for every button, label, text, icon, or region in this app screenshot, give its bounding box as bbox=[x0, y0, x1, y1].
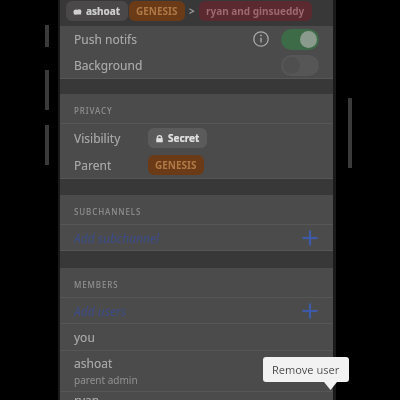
button[interactable]: ashoat bbox=[60, 351, 333, 391]
staticText: MEMBERS bbox=[74, 279, 119, 290]
staticText: Remove user bbox=[272, 362, 340, 377]
button[interactable]: Off bbox=[281, 55, 319, 76]
button[interactable]: you bbox=[60, 324, 333, 350]
staticText: PRIVACY bbox=[74, 105, 113, 116]
button[interactable]: Add bbox=[301, 229, 319, 247]
button[interactable]: Parent bbox=[60, 151, 333, 178]
staticText: Parent bbox=[74, 157, 112, 173]
button[interactable]: Add bbox=[301, 302, 319, 320]
staticText: GENESIS bbox=[155, 158, 197, 172]
button[interactable]: Add subchannel bbox=[60, 225, 333, 250]
button[interactable]: GENESIS bbox=[129, 1, 185, 21]
staticText: Add subchannel bbox=[74, 230, 160, 246]
staticText: ryan and ginsueddy bbox=[206, 4, 305, 18]
staticText: Visibility bbox=[74, 130, 121, 146]
staticText: Background bbox=[74, 57, 143, 73]
staticText: SUBCHANNELS bbox=[74, 206, 142, 217]
staticText: parent admin bbox=[74, 373, 138, 387]
button[interactable]: Visibility bbox=[60, 124, 333, 151]
button[interactable]: Secret bbox=[148, 128, 207, 148]
button[interactable]: ryan and ginsueddy bbox=[199, 1, 312, 21]
staticText: ashoat bbox=[86, 4, 121, 18]
staticText: Add users bbox=[74, 303, 126, 319]
staticText: Push notifs bbox=[74, 31, 137, 47]
button[interactable]: Info bbox=[253, 31, 269, 47]
button[interactable]: On bbox=[281, 29, 319, 50]
staticText: ashoat bbox=[74, 355, 113, 371]
staticText: > bbox=[189, 4, 195, 18]
button[interactable]: Remove user bbox=[263, 357, 349, 382]
staticText: you bbox=[74, 329, 95, 345]
button[interactable]: ryan bbox=[60, 392, 333, 400]
button[interactable]: Push notifs bbox=[60, 26, 333, 52]
button[interactable]: Add users bbox=[60, 298, 333, 323]
staticText: Secret bbox=[168, 131, 200, 145]
staticText: GENESIS bbox=[136, 4, 178, 18]
button[interactable]: Background bbox=[60, 52, 333, 78]
button[interactable]: ashoat bbox=[66, 1, 128, 21]
button[interactable]: GENESIS bbox=[148, 155, 204, 175]
staticText: ryan bbox=[74, 392, 100, 400]
